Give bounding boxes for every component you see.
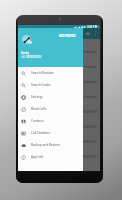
button[interactable]: Search Codes xyxy=(18,79,83,91)
staticText: Contact xyxy=(31,93,43,97)
button[interactable]: Search Number xyxy=(18,67,83,79)
staticText: Yesterday xyxy=(84,65,97,69)
staticText: 01/05/2017 xyxy=(82,125,97,129)
button[interactable]: Contact xyxy=(18,59,100,74)
staticText: +91 98XXXXXXXX xyxy=(31,82,52,86)
staticText: +91-90XXXXXXXX xyxy=(21,55,42,59)
staticText: App Info xyxy=(31,155,44,159)
button[interactable]: Contact xyxy=(18,149,100,164)
button[interactable]: Contact xyxy=(18,44,100,59)
button[interactable]: Settings xyxy=(18,91,83,103)
staticText: +91 98XXXXXXXX xyxy=(31,52,52,56)
staticText: 20/03/2017 xyxy=(82,155,97,159)
staticText: Yesterday xyxy=(84,95,97,99)
staticText: Backup and Restore xyxy=(31,143,60,147)
button[interactable]: Backup xyxy=(83,29,92,38)
staticText: Contacts xyxy=(31,119,44,123)
staticText: Andy xyxy=(21,50,29,54)
staticText: Yesterday xyxy=(84,50,97,54)
button[interactable]: Contact xyxy=(18,74,100,89)
staticText: Settings xyxy=(31,95,43,99)
staticText: Yesterday xyxy=(84,80,97,84)
staticText: Search Codes xyxy=(31,83,51,87)
button[interactable]: App Info xyxy=(18,151,83,163)
button[interactable]: More options xyxy=(93,29,98,38)
staticText: Contact xyxy=(31,108,43,112)
staticText: Search Number xyxy=(31,71,54,75)
staticText: +91 98XXXXXXXX xyxy=(31,97,52,101)
button[interactable]: Call Statistics xyxy=(18,127,83,139)
button[interactable]: EDIT PROFILE xyxy=(58,33,77,38)
button[interactable]: Contact xyxy=(18,119,100,134)
staticText: Block Calls xyxy=(31,107,47,111)
button[interactable]: Contact xyxy=(18,104,100,119)
staticText: Call Statistics xyxy=(31,131,50,135)
button[interactable]: Block Calls xyxy=(18,103,83,115)
button[interactable]: Contacts xyxy=(18,115,83,127)
staticText: +91 98XXXXXXXX xyxy=(31,142,52,146)
staticText: +91 98XXXXXXXX xyxy=(31,157,52,161)
staticText: 06/05/2017 xyxy=(82,110,97,114)
button[interactable]: Backup and Restore xyxy=(18,139,83,151)
button[interactable]: Contact xyxy=(18,134,100,149)
button[interactable]: Contact xyxy=(18,89,100,104)
staticText: 25/03/2017 xyxy=(82,140,97,144)
staticText: 2:36 PM xyxy=(87,25,98,28)
staticText: Contact xyxy=(31,153,43,157)
staticText: EDIT PROFILE xyxy=(59,34,76,37)
button[interactable]: EDIT PROFILE xyxy=(18,25,83,67)
